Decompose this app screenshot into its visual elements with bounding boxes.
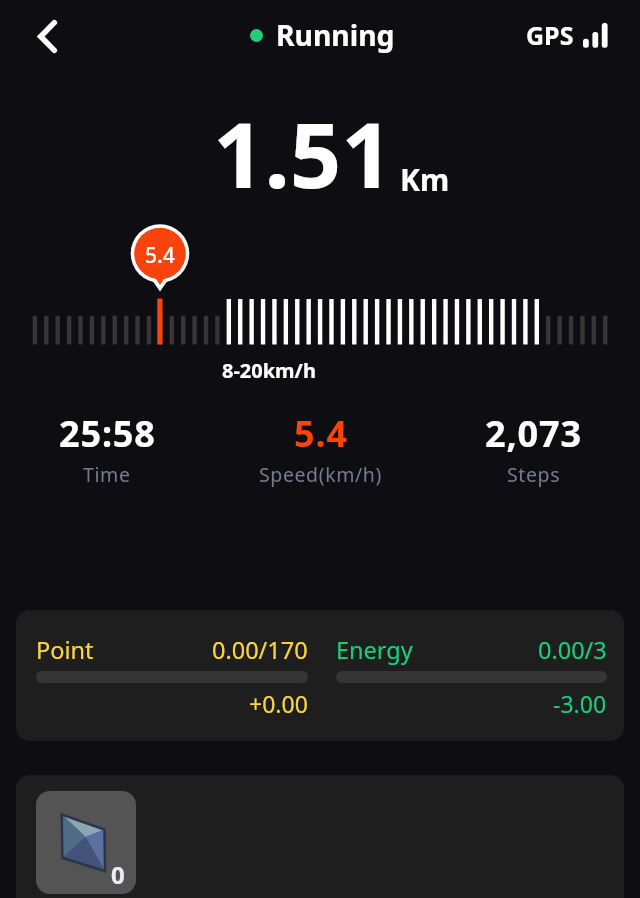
staticText: Point [36, 634, 94, 666]
button[interactable]: GPS signal [526, 18, 609, 52]
staticText: 8-20km/h [222, 357, 316, 384]
button[interactable]: Point [16, 610, 624, 741]
staticText: 2,073 [485, 409, 582, 458]
staticText: Speed(km/h) [259, 461, 382, 488]
button[interactable]: Back [23, 12, 71, 60]
staticText: Running [276, 16, 395, 55]
staticText: -3.00 [553, 688, 607, 719]
staticText: Steps [507, 461, 561, 488]
staticText: 0 [111, 858, 125, 891]
button[interactable]: Gem item [36, 791, 136, 894]
staticText: +0.00 [249, 688, 308, 719]
staticText: 25:58 [59, 409, 156, 458]
staticText: 0.00/170 [212, 634, 308, 666]
staticText: Km [400, 159, 450, 200]
button[interactable]: Collected items [16, 775, 624, 898]
staticText: Time [83, 461, 131, 488]
staticText: GPS [526, 18, 574, 52]
staticText: 0.00/3 [538, 634, 607, 666]
staticText: 1.51 [213, 92, 393, 215]
staticText: Energy [336, 634, 413, 666]
staticText: 5.4 [294, 409, 348, 458]
staticText: 5.4 [145, 241, 175, 270]
